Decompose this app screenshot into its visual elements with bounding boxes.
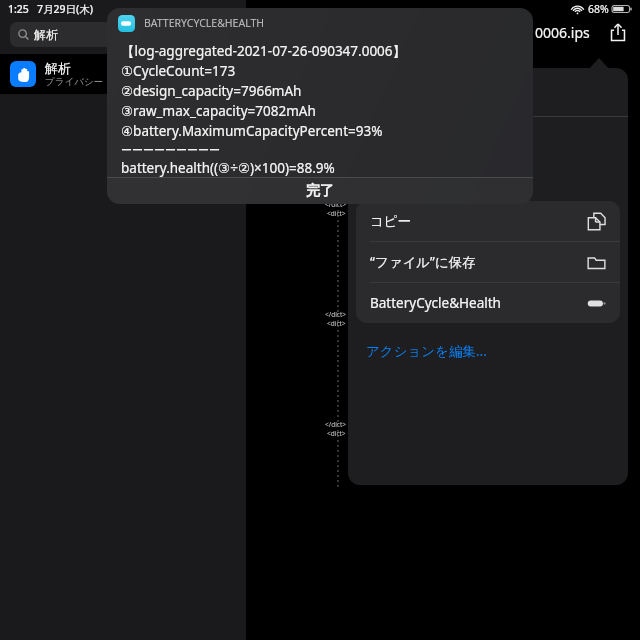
button[interactable]: BatteryCycle&Health xyxy=(356,283,620,323)
staticText: ーーーーーーーーー xyxy=(121,143,220,157)
staticText: <dict> xyxy=(327,319,346,328)
staticText: 1:25 xyxy=(8,2,29,16)
staticText: 【log-aggregated-2021-07-26-090347.0006】 xyxy=(121,42,407,60)
staticText: </dict> xyxy=(325,200,346,209)
staticText: 0006.ips xyxy=(535,23,590,42)
staticText: </dict> xyxy=(325,310,346,319)
button[interactable]: コピー xyxy=(356,201,620,241)
button[interactable]: 解析 xyxy=(0,54,246,94)
staticText: 解析 xyxy=(34,27,58,42)
staticText: </dict> xyxy=(325,420,346,429)
button[interactable]: Share xyxy=(604,18,632,46)
staticText: ③raw_max_capacity=7082mAh xyxy=(121,102,316,120)
button[interactable]: 解析 xyxy=(10,22,236,47)
staticText: 68% xyxy=(588,2,609,16)
staticText: ④battery.MaximumCapacityPercent=93% xyxy=(121,122,383,140)
staticText: BatteryCycle&Health xyxy=(370,294,501,312)
button[interactable]: アクションを編集... xyxy=(356,335,620,367)
staticText: プライバシー xyxy=(45,76,104,88)
staticText: ②design_capacity=7966mAh xyxy=(121,82,302,100)
staticText: アクションを編集... xyxy=(366,342,487,360)
staticText: “ファイル”に保存 xyxy=(370,253,476,271)
staticText: <dict> xyxy=(327,209,346,218)
staticText: <dict> xyxy=(327,429,346,438)
staticText: BATTERYCYCLE&HEALTH xyxy=(144,16,265,30)
button[interactable]: “ファイル”に保存 xyxy=(356,242,620,282)
staticText: 7月29日(木) xyxy=(37,2,94,16)
staticText: battery.health((③÷②)×100)=88.9% xyxy=(121,159,335,177)
button[interactable]: 完了 xyxy=(107,178,533,204)
staticText: 完了 xyxy=(306,182,334,200)
staticText: ①CycleCount=173 xyxy=(121,62,236,80)
staticText: コピー xyxy=(370,213,412,230)
staticText: 解析 xyxy=(45,60,71,76)
